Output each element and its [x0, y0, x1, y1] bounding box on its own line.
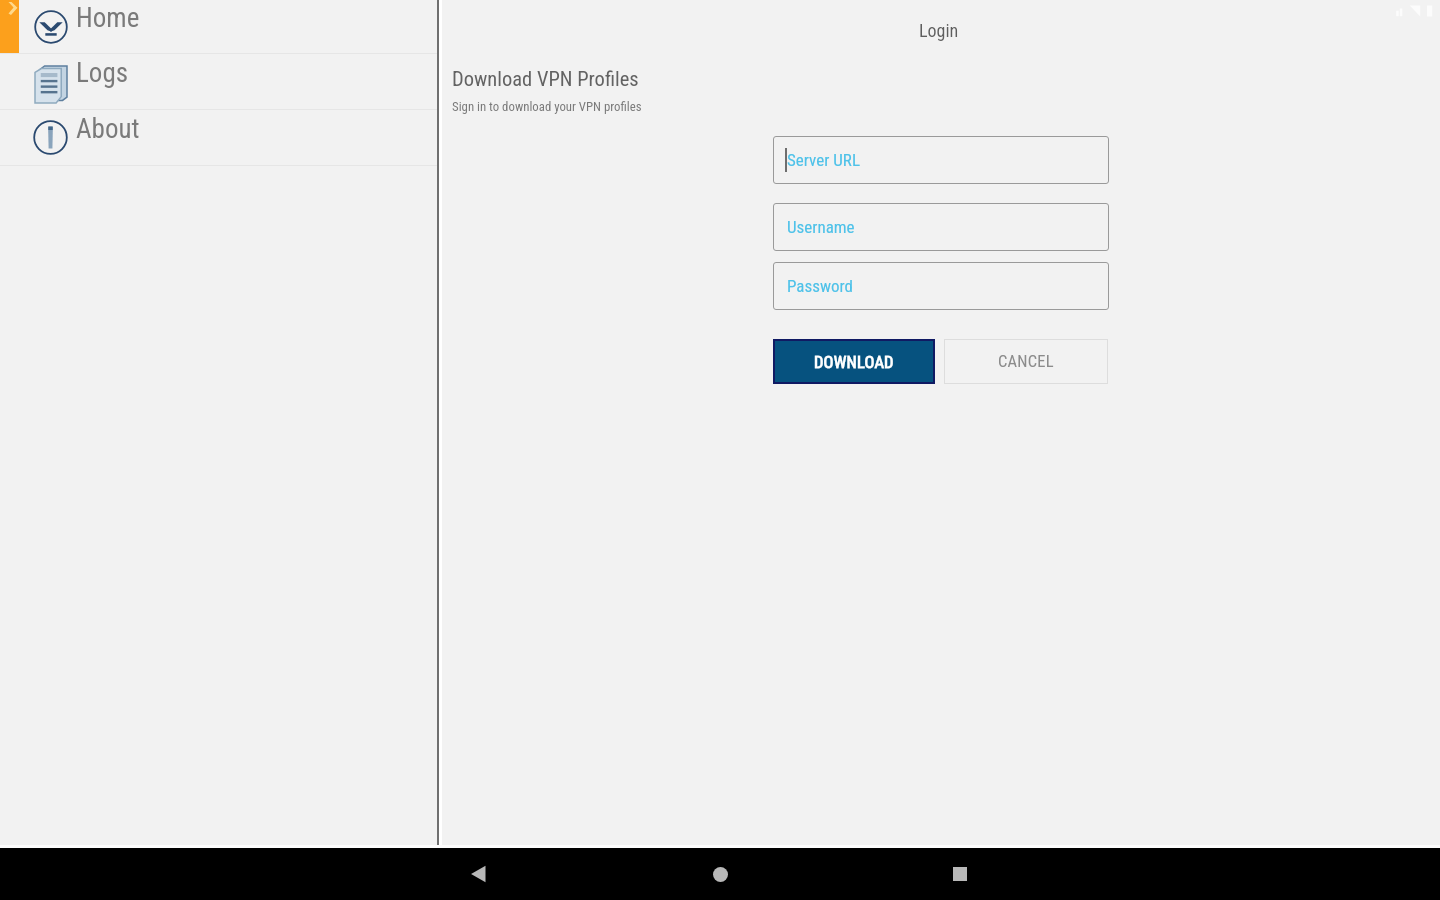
- staticText: Logs: [76, 57, 129, 89]
- staticText: DOWNLOAD: [814, 353, 894, 372]
- button[interactable]: CANCEL: [944, 339, 1108, 384]
- button[interactable]: Recent apps: [936, 848, 984, 900]
- button[interactable]: Home: [0, 0, 437, 53]
- button[interactable]: DOWNLOAD: [775, 341, 933, 382]
- staticText: CANCEL: [998, 352, 1054, 371]
- button[interactable]: Password: [773, 262, 1109, 310]
- staticText: About: [76, 113, 140, 145]
- button[interactable]: About: [0, 110, 437, 165]
- button[interactable]: Login: [919, 20, 959, 41]
- button[interactable]: Logs: [0, 54, 437, 109]
- button[interactable]: Username: [773, 203, 1109, 251]
- button[interactable]: Back: [455, 848, 503, 900]
- button[interactable]: Server URL: [773, 136, 1109, 184]
- staticText: Download VPN Profiles: [452, 67, 639, 91]
- staticText: Password: [787, 276, 854, 296]
- staticText: Username: [787, 217, 855, 237]
- staticText: Sign in to download your VPN profiles: [452, 99, 642, 114]
- staticText: Server URL: [787, 150, 860, 170]
- staticText: Login: [919, 20, 959, 41]
- button[interactable]: Home: [696, 848, 744, 900]
- staticText: Home: [76, 2, 140, 34]
